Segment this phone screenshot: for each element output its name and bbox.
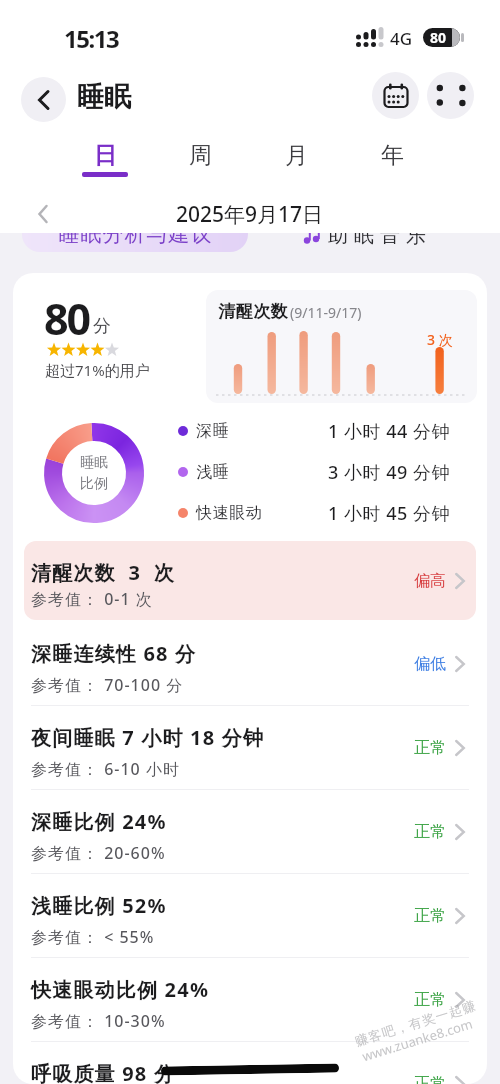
staticText: 年 bbox=[381, 141, 404, 170]
staticText: 参考值： 0-1 次 bbox=[31, 588, 153, 610]
button[interactable]: 呼吸质量 98 分 bbox=[24, 1042, 476, 1084]
staticText: 15:13 bbox=[64, 22, 119, 55]
staticText: 浅睡比例 52% bbox=[31, 892, 167, 919]
staticText: 日 bbox=[94, 141, 117, 170]
button[interactable]: 年 bbox=[352, 133, 432, 178]
staticText: 80 bbox=[44, 289, 90, 348]
staticText: 正常 bbox=[414, 990, 446, 1010]
staticText: 参考值： < 55% bbox=[31, 926, 155, 948]
staticText: 深睡连续性 68 分 bbox=[31, 640, 197, 667]
staticText: 3 小时 49 分钟 bbox=[328, 460, 450, 485]
staticText: (9/11-9/17) bbox=[290, 303, 362, 322]
staticText: 2025年9月17日 bbox=[176, 200, 324, 229]
staticText: 深睡 bbox=[196, 421, 229, 441]
button[interactable]: 夜间睡眠 7 小时 18 分钟 bbox=[24, 706, 476, 790]
staticText: 正常 bbox=[414, 822, 446, 842]
staticText: 周 bbox=[189, 141, 212, 170]
staticText: 睡眠 比例 bbox=[80, 454, 108, 492]
staticText: 呼吸质量 98 分 bbox=[31, 1060, 176, 1084]
button[interactable] bbox=[427, 72, 474, 119]
button[interactable]: 深睡连续性 68 分 bbox=[24, 622, 476, 706]
staticText: 正常 bbox=[414, 906, 446, 926]
button[interactable]: 助眠音乐 bbox=[303, 221, 443, 249]
button[interactable]: 浅睡比例 52% bbox=[24, 874, 476, 958]
staticText: 赚客吧，有奖一起赚 bbox=[352, 997, 478, 1049]
staticText: 3 次 bbox=[427, 330, 453, 349]
staticText: 快速眼动比例 24% bbox=[31, 976, 210, 1003]
staticText: www.zuanke8.com bbox=[360, 1014, 475, 1065]
staticText: 偏低 bbox=[414, 654, 446, 674]
staticText: 正常 bbox=[414, 1074, 446, 1084]
staticText: 快速眼动 bbox=[196, 503, 262, 523]
button[interactable]: 日 bbox=[65, 133, 145, 178]
staticText: 正常 bbox=[414, 738, 446, 758]
button[interactable]: 快速眼动比例 24% bbox=[24, 958, 476, 1042]
button[interactable] bbox=[38, 205, 48, 223]
staticText: 分 bbox=[93, 315, 111, 338]
button[interactable]: 周 bbox=[160, 133, 240, 178]
staticText: 睡眠 bbox=[77, 80, 131, 114]
button[interactable]: 深睡比例 24% bbox=[24, 790, 476, 874]
staticText: 清醒次数 bbox=[218, 301, 288, 322]
staticText: 深睡比例 24% bbox=[31, 808, 167, 835]
staticText: 浅睡 bbox=[196, 462, 229, 482]
staticText: 4G bbox=[390, 27, 413, 50]
button[interactable] bbox=[21, 77, 66, 122]
button[interactable]: 清醒次数 3 次 bbox=[24, 541, 476, 620]
staticText: 偏高 bbox=[414, 571, 446, 591]
button[interactable] bbox=[372, 72, 419, 119]
button[interactable]: 睡眠分析与建议 bbox=[22, 216, 248, 252]
staticText: 1 小时 44 分钟 bbox=[328, 419, 450, 444]
staticText: 参考值： 10-30% bbox=[31, 1010, 166, 1032]
staticText: 超过71%的用户 bbox=[45, 360, 150, 380]
staticText: 助眠音乐 bbox=[325, 223, 429, 248]
staticText: 参考值： 20-60% bbox=[31, 842, 166, 864]
staticText: 1 小时 45 分钟 bbox=[328, 501, 450, 526]
staticText: 参考值： 6-10 小时 bbox=[31, 758, 180, 780]
staticText: 睡眠分析与建议 bbox=[58, 221, 212, 247]
staticText: 清醒次数 3 次 bbox=[31, 559, 176, 586]
staticText: 夜间睡眠 7 小时 18 分钟 bbox=[31, 724, 265, 751]
staticText: 80 bbox=[430, 28, 447, 47]
staticText: 月 bbox=[285, 141, 308, 170]
button[interactable]: 月 bbox=[256, 133, 336, 178]
staticText: 参考值： 70-100 分 bbox=[31, 674, 184, 696]
